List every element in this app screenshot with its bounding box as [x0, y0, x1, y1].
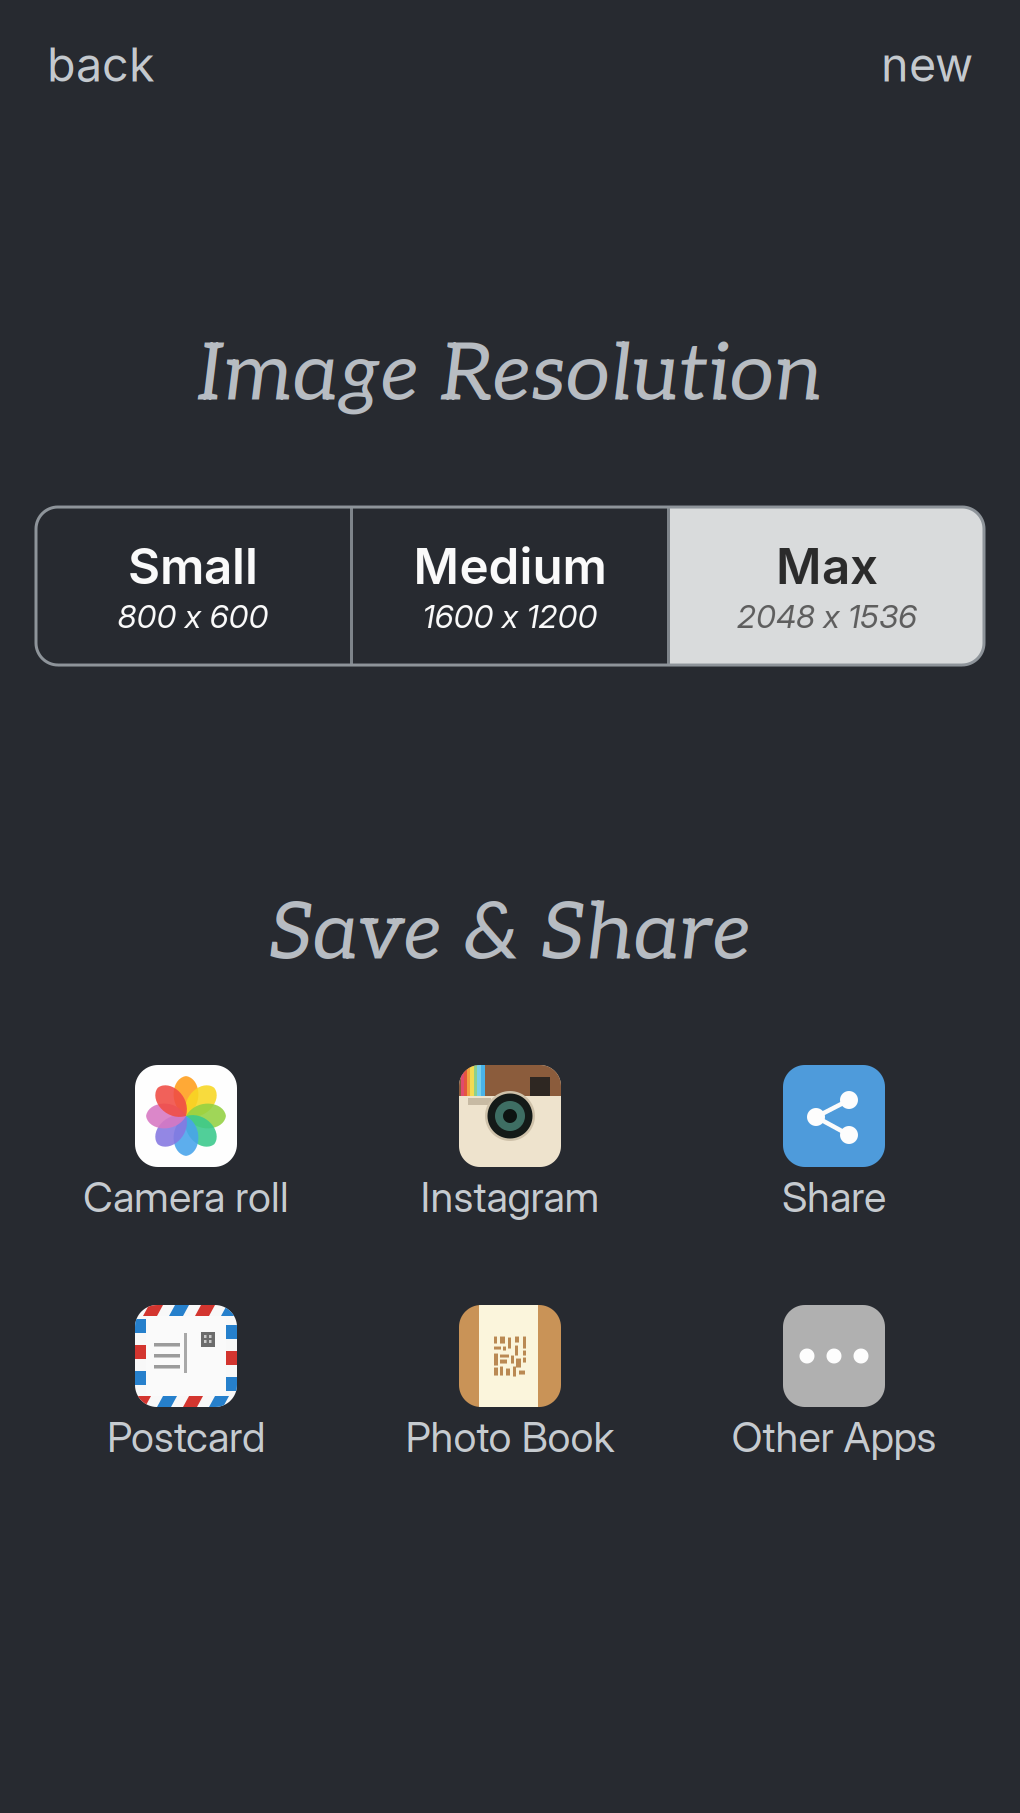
staticText: Small [128, 536, 258, 596]
button[interactable]: Medium [353, 507, 667, 665]
button[interactable]: new [867, 24, 987, 105]
staticText: Instagram [420, 1172, 599, 1222]
staticText: Postcard [107, 1412, 265, 1462]
button[interactable]: Photo Book [348, 1305, 672, 1462]
button[interactable]: Max [670, 507, 984, 665]
staticText: Camera roll [83, 1172, 289, 1222]
button[interactable]: Other Apps [672, 1305, 996, 1462]
staticText: 1600 x 1200 [422, 597, 597, 636]
staticText: Medium [413, 536, 606, 596]
staticText: new [881, 36, 973, 93]
staticText: back [47, 36, 155, 93]
staticText: Max [776, 536, 878, 596]
button[interactable]: back [33, 24, 169, 105]
staticText: Save & Share [268, 886, 751, 982]
staticText: Photo Book [405, 1412, 614, 1462]
button[interactable]: Postcard [24, 1305, 348, 1462]
button[interactable]: Camera roll [24, 1065, 348, 1222]
button[interactable]: Instagram [348, 1065, 672, 1222]
staticText: Share [782, 1172, 886, 1222]
staticText: Image Resolution [197, 327, 822, 423]
staticText: 2048 x 1536 [737, 597, 917, 636]
staticText: Other Apps [731, 1412, 936, 1462]
staticText: 800 x 600 [117, 597, 268, 636]
button[interactable]: Small [36, 507, 350, 665]
button[interactable]: Share [672, 1065, 996, 1222]
